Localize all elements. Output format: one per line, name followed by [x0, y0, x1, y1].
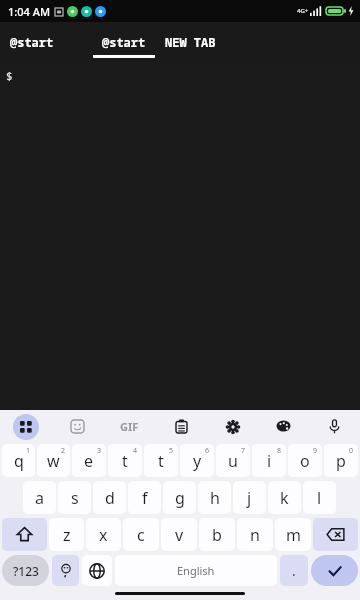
button[interactable]: i	[252, 444, 286, 477]
button[interactable]: d	[93, 481, 126, 514]
staticText: i	[267, 450, 272, 472]
staticText: g	[175, 487, 185, 509]
staticText: 1:04 AM	[8, 4, 51, 19]
staticText: s	[71, 487, 79, 509]
staticText: ?123	[13, 563, 39, 579]
staticText: q	[14, 450, 24, 472]
staticText: 6	[205, 446, 210, 456]
staticText: 4	[133, 446, 138, 456]
button[interactable]: g	[163, 481, 196, 514]
staticText: v	[175, 524, 184, 546]
staticText: u	[228, 450, 238, 472]
staticText: 8	[277, 446, 282, 456]
button[interactable]: Keyboard modes	[0, 410, 52, 443]
staticText: $	[6, 68, 13, 83]
button[interactable]: Stickers	[52, 410, 103, 443]
staticText: 1	[26, 446, 31, 456]
staticText: NEW TAB	[165, 34, 216, 50]
button[interactable]: a	[23, 481, 56, 514]
button[interactable]: s	[58, 481, 91, 514]
staticText: t	[158, 450, 164, 472]
staticText: 5	[169, 446, 174, 456]
staticText: h	[210, 487, 220, 509]
button[interactable]: Clipboard	[156, 410, 207, 443]
button[interactable]: NEW TAB	[165, 22, 245, 62]
staticText: 7	[241, 446, 246, 456]
button[interactable]: Theme	[258, 410, 309, 443]
staticText: b	[212, 524, 222, 546]
button[interactable]: l	[303, 481, 336, 514]
button[interactable]: English	[115, 555, 277, 586]
staticText: p	[336, 450, 346, 472]
button[interactable]: o	[288, 444, 322, 477]
button[interactable]: t	[144, 444, 178, 477]
button[interactable]: b	[199, 518, 235, 551]
button[interactable]: Settings	[207, 410, 258, 443]
staticText: GIF	[120, 419, 139, 434]
button[interactable]: y	[180, 444, 214, 477]
staticText: z	[63, 524, 71, 546]
staticText: c	[137, 524, 145, 546]
staticText: k	[280, 487, 289, 509]
button[interactable]: p	[324, 444, 358, 477]
button[interactable]: x	[86, 518, 121, 551]
staticText: 2	[61, 446, 66, 456]
staticText: a	[35, 487, 44, 509]
button[interactable]: GIF	[103, 410, 156, 443]
button[interactable]: t	[108, 444, 142, 477]
button[interactable]: q	[2, 444, 35, 477]
staticText: d	[105, 487, 115, 509]
staticText: l	[317, 487, 322, 509]
button[interactable]: Enter	[311, 555, 358, 586]
button[interactable]: m	[275, 518, 311, 551]
staticText: 9	[313, 446, 318, 456]
button[interactable]: e	[72, 444, 106, 477]
staticText: English	[177, 563, 215, 578]
button[interactable]: Shift	[2, 518, 47, 551]
staticText: t	[122, 450, 128, 472]
button[interactable]: Backspace	[313, 518, 358, 551]
button[interactable]: Change language	[82, 555, 112, 586]
staticText: m	[286, 524, 301, 546]
staticText: n	[250, 524, 260, 546]
staticText: 3	[97, 446, 102, 456]
staticText: j	[247, 487, 252, 509]
staticText: f	[142, 487, 148, 509]
button[interactable]: @start	[90, 22, 158, 62]
button[interactable]: k	[268, 481, 301, 514]
button[interactable]: h	[198, 481, 231, 514]
staticText: 4G+	[297, 7, 309, 15]
button[interactable]: v	[161, 518, 197, 551]
button[interactable]: u	[216, 444, 250, 477]
staticText: o	[300, 450, 310, 472]
button[interactable]: n	[237, 518, 273, 551]
button[interactable]: w	[37, 444, 70, 477]
staticText: 0	[349, 446, 354, 456]
staticText: .	[292, 561, 296, 580]
staticText: @start	[10, 34, 54, 50]
staticText: y	[193, 450, 202, 472]
staticText: e	[84, 450, 94, 472]
button[interactable]: z	[49, 518, 84, 551]
button[interactable]: c	[123, 518, 159, 551]
button[interactable]: f	[128, 481, 161, 514]
button[interactable]: j	[233, 481, 266, 514]
staticText: x	[99, 524, 108, 546]
button[interactable]: Emoji	[52, 555, 79, 586]
button[interactable]: Voice input	[309, 410, 360, 443]
button[interactable]: .	[280, 555, 308, 586]
staticText: @start	[102, 34, 146, 50]
staticText: w	[47, 450, 60, 472]
button[interactable]: ?123	[2, 555, 49, 586]
